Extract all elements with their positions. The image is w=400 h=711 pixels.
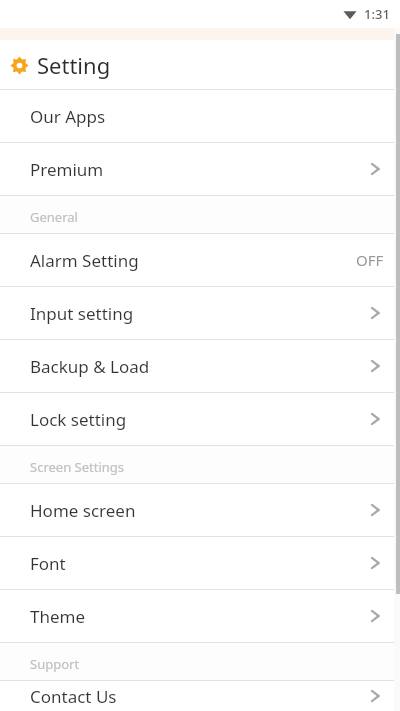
button[interactable]: Home screen [0, 484, 400, 536]
staticText: Font [30, 552, 66, 575]
other: Open Premium [366, 160, 384, 178]
staticText: Contact Us [30, 685, 117, 708]
staticText: Input setting [30, 302, 134, 325]
button[interactable]: Lock setting [0, 393, 400, 445]
button[interactable]: Contact Us [0, 681, 400, 711]
button[interactable]: Premium [0, 143, 400, 195]
button[interactable]: Input setting [0, 287, 400, 339]
staticText: Backup & Load [30, 355, 150, 378]
staticText: Screen Settings [30, 458, 125, 476]
staticText: Setting [37, 50, 111, 80]
staticText: General [30, 208, 78, 226]
button[interactable]: Theme [0, 590, 400, 642]
staticText: Home screen [30, 499, 136, 522]
button[interactable]: Our Apps [0, 90, 400, 142]
other: Open Theme [366, 607, 384, 625]
staticText: Alarm Setting [30, 249, 139, 272]
other: Open Home screen [366, 501, 384, 519]
staticText: Support [30, 655, 80, 673]
other: Open Contact Us [366, 687, 384, 705]
staticText: Lock setting [30, 408, 127, 431]
button[interactable]: Font [0, 537, 400, 589]
other: Open Lock setting [366, 410, 384, 428]
other: Open Backup & Load [366, 357, 384, 375]
other: Open Input setting [366, 304, 384, 322]
other: Open Font [366, 554, 384, 572]
staticText: OFF [356, 250, 384, 270]
staticText: Theme [30, 605, 86, 628]
staticText: Our Apps [30, 105, 106, 128]
staticText: Premium [30, 158, 104, 181]
button[interactable]: Backup & Load [0, 340, 400, 392]
button[interactable]: Alarm Setting [0, 234, 400, 286]
staticText: 1:31 [364, 5, 390, 23]
